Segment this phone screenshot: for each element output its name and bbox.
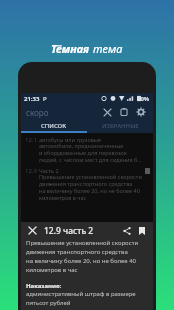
staticText: 12.9 часть 2 bbox=[44, 225, 94, 237]
staticText: ИЗБРАННЫЕ bbox=[102, 122, 139, 130]
staticText: административный штраф в размере пятьсот… bbox=[26, 290, 136, 306]
button[interactable]: 12.1 bbox=[21, 133, 153, 164]
staticText: автобусы или грузовые автомобили, предна… bbox=[39, 136, 145, 164]
staticText: скоро bbox=[26, 107, 49, 118]
staticText: Тёмная bbox=[51, 41, 90, 56]
button[interactable]: СПИСОК bbox=[21, 120, 87, 131]
button[interactable]: Copy bbox=[117, 105, 131, 119]
staticText: Превышение установленной скорости движен… bbox=[26, 239, 139, 273]
staticText: 50% bbox=[137, 95, 150, 103]
button[interactable]: ИЗБРАННЫЕ bbox=[87, 120, 153, 131]
button[interactable]: 12.9 bbox=[21, 164, 153, 202]
button[interactable]: Bookmark bbox=[135, 224, 148, 237]
staticText: Часть 2 Превышение установленной скорост… bbox=[39, 167, 145, 202]
staticText: 21:33 bbox=[24, 95, 40, 103]
button[interactable]: Close bbox=[26, 224, 39, 237]
staticText: 12.1 bbox=[25, 136, 39, 144]
staticText: СПИСОК bbox=[41, 122, 67, 130]
staticText: Наказание: bbox=[26, 282, 62, 290]
staticText: тема bbox=[93, 41, 123, 56]
button[interactable]: Share bbox=[120, 224, 133, 237]
staticText: P bbox=[43, 95, 47, 103]
button[interactable]: Clear bbox=[100, 105, 114, 119]
button[interactable]: Settings bbox=[134, 105, 148, 119]
staticText: 12.9 bbox=[25, 167, 39, 175]
